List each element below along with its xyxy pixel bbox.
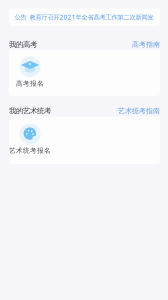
button[interactable]: 高考报名 (10, 57, 50, 87)
staticText: 高考报名 (16, 79, 44, 88)
staticText: 艺术统考指南 (118, 107, 160, 115)
button[interactable]: 艺术统考指南 (118, 107, 160, 115)
staticText: 公告 (14, 13, 26, 21)
staticText: 教育厅召开2021年全省高考工作第二次新闻发 (29, 13, 153, 21)
button[interactable]: 公告 (9, 8, 160, 26)
staticText: 我的艺术统考 (9, 106, 51, 116)
staticText: 高考指南 (132, 40, 160, 49)
staticText: 艺术统考报名 (9, 146, 51, 155)
button[interactable]: 高考指南 (132, 40, 160, 49)
button[interactable]: 艺术统考报名 (4, 124, 56, 154)
staticText: 我的高考 (9, 40, 37, 49)
